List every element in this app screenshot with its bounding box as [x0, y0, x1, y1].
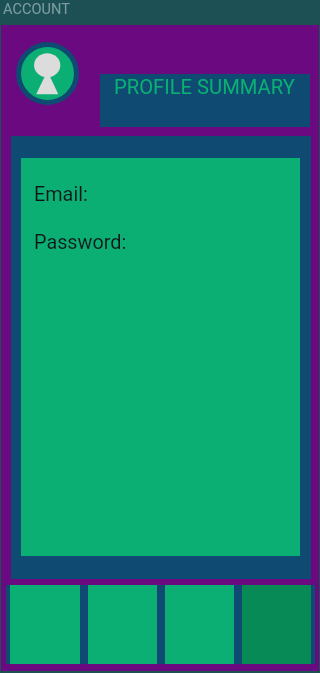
button[interactable]: Profile avatar — [16, 42, 79, 105]
button[interactable]: PROFILE SUMMARY — [100, 74, 310, 127]
staticText: ACCOUNT — [3, 0, 70, 17]
staticText: PROFILE SUMMARY — [114, 75, 295, 99]
staticText: Email: — [34, 183, 88, 206]
staticText: Password: — [34, 231, 127, 254]
